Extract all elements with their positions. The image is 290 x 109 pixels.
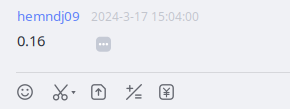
button[interactable]: Payment: [159, 84, 174, 100]
button[interactable]: Emoji: [17, 84, 33, 100]
staticText: 2024-3-17 15:04:00: [91, 8, 199, 24]
button[interactable]: Clip: [53, 84, 76, 100]
button[interactable]: More options: [96, 37, 111, 52]
button[interactable]: Upload: [91, 84, 106, 100]
staticText: 0.16: [17, 31, 45, 50]
button[interactable]: hemndj09: [17, 7, 80, 25]
staticText: hemndj09: [17, 7, 80, 25]
button[interactable]: Calculate: [126, 84, 142, 100]
